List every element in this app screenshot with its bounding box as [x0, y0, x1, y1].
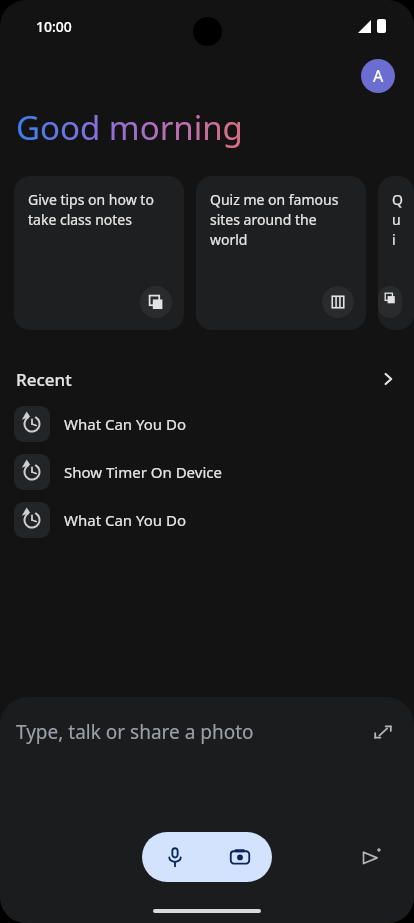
staticText: What Can You Do [64, 510, 187, 530]
button[interactable]: Give tips on how to take class notes [14, 176, 184, 330]
staticText: Type, talk or share a photo [16, 719, 254, 745]
button[interactable]: Suggestion action [322, 286, 354, 318]
staticText: 10:00 [36, 17, 72, 36]
staticText: Quiz me on device settings [392, 190, 402, 249]
button[interactable]: Type, talk or share a photo [0, 697, 414, 781]
button[interactable]: Quiz me on famous sites around the world [196, 176, 366, 330]
button[interactable]: Account [361, 59, 395, 93]
button[interactable]: Quiz me on device settings [378, 176, 414, 330]
button[interactable]: Suggestion action [140, 286, 172, 318]
button[interactable]: What Can You Do [0, 406, 414, 442]
staticText: Recent [16, 368, 72, 391]
staticText: What Can You Do [64, 414, 187, 434]
button[interactable]: What Can You Do [0, 502, 414, 538]
button[interactable]: Voice input [142, 832, 207, 882]
button[interactable]: Expand [370, 719, 396, 745]
staticText: Give tips on how to take class notes [28, 190, 172, 229]
button[interactable]: Recent [0, 362, 414, 396]
staticText: Good morning [16, 105, 243, 150]
button[interactable]: Suggestion action [378, 286, 402, 318]
staticText: Show Timer On Device [64, 462, 222, 482]
staticText: A [373, 65, 384, 87]
button[interactable]: Show Timer On Device [0, 454, 414, 490]
button[interactable]: Camera [207, 832, 272, 882]
button[interactable]: Send [354, 840, 388, 874]
staticText: Quiz me on famous sites around the world [210, 190, 354, 249]
